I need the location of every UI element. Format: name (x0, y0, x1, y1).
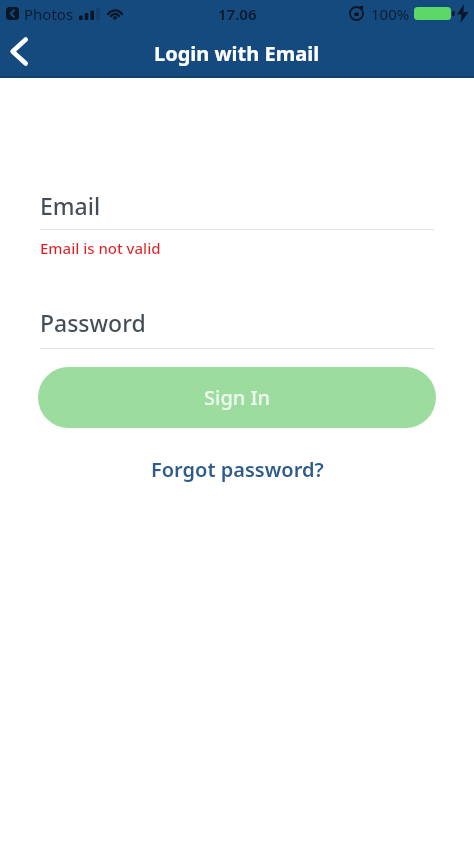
button[interactable]: Forgot password? (151, 456, 324, 483)
staticText: Email (40, 190, 101, 221)
staticText: 100% (371, 4, 410, 24)
button[interactable]: Sign In (38, 367, 436, 428)
staticText: Email is not valid (40, 238, 161, 258)
staticText: Password (40, 307, 146, 338)
button[interactable] (0, 31, 37, 71)
staticText: Forgot password? (151, 456, 324, 483)
staticText: Photos (24, 4, 74, 24)
staticText: 17.06 (218, 4, 257, 24)
staticText: Sign In (204, 384, 271, 411)
staticText: Login with Email (154, 40, 320, 67)
